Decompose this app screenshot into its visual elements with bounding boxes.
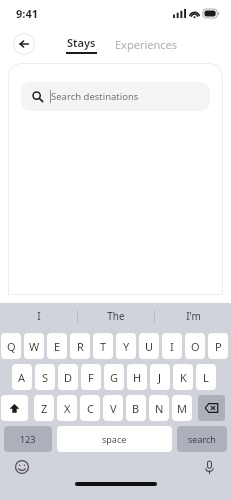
button[interactable]: The xyxy=(78,309,154,323)
button[interactable]: Emoji xyxy=(14,459,30,475)
button[interactable]: Search destinations xyxy=(21,82,210,111)
button[interactable]: Stays xyxy=(64,35,99,54)
staticText: B xyxy=(132,401,140,416)
button[interactable]: M xyxy=(172,395,192,421)
button[interactable]: Dictation xyxy=(201,459,217,475)
staticText: Search destinations xyxy=(51,90,139,103)
staticText: K xyxy=(180,370,187,385)
button[interactable]: Q xyxy=(1,333,21,359)
button[interactable]: Experiences xyxy=(113,35,180,54)
staticText: T xyxy=(100,339,107,354)
staticText: E xyxy=(54,339,61,354)
button[interactable]: search xyxy=(177,426,227,452)
staticText: F xyxy=(88,370,94,385)
staticText: Z xyxy=(41,401,48,416)
button[interactable]: I'm xyxy=(155,309,231,323)
staticText: Stays xyxy=(67,35,96,50)
button[interactable]: C xyxy=(80,395,100,421)
staticText: X xyxy=(64,401,71,416)
button[interactable]: K xyxy=(173,364,193,390)
button[interactable]: B xyxy=(126,395,146,421)
button[interactable]: X xyxy=(57,395,77,421)
staticText: R xyxy=(77,339,84,354)
button[interactable]: A xyxy=(12,364,32,390)
staticText: search xyxy=(188,433,216,445)
button[interactable]: E xyxy=(47,333,67,359)
staticText: space xyxy=(102,433,127,445)
button[interactable]: Y xyxy=(116,333,136,359)
button[interactable]: P xyxy=(208,333,228,359)
staticText: S xyxy=(42,370,49,385)
staticText: D xyxy=(64,370,73,385)
button[interactable]: W xyxy=(24,333,44,359)
button[interactable]: J xyxy=(150,364,170,390)
button[interactable]: S xyxy=(35,364,55,390)
staticText: The xyxy=(107,309,125,323)
staticText: U xyxy=(145,339,154,354)
button[interactable]: T xyxy=(93,333,113,359)
staticText: Q xyxy=(7,339,16,354)
button[interactable]: H xyxy=(127,364,147,390)
button[interactable]: L xyxy=(196,364,216,390)
staticText: P xyxy=(215,339,222,354)
button[interactable]: Z xyxy=(34,395,54,421)
staticText: A xyxy=(18,370,26,385)
button[interactable]: 123 xyxy=(4,426,52,452)
button[interactable]: Back xyxy=(13,33,35,55)
button[interactable]: N xyxy=(149,395,169,421)
staticText: M xyxy=(177,401,187,416)
staticText: I xyxy=(37,309,41,323)
staticText: I'm xyxy=(186,309,201,323)
button[interactable]: R xyxy=(70,333,90,359)
button[interactable]: O xyxy=(185,333,205,359)
button[interactable]: Shift xyxy=(1,395,28,421)
button[interactable]: U xyxy=(139,333,159,359)
staticText: G xyxy=(110,370,119,385)
button[interactable]: D xyxy=(58,364,78,390)
button[interactable]: Backspace xyxy=(198,395,225,421)
button[interactable]: G xyxy=(104,364,124,390)
button[interactable]: F xyxy=(81,364,101,390)
staticText: J xyxy=(158,370,162,385)
button[interactable]: space xyxy=(57,426,172,452)
button[interactable]: V xyxy=(103,395,123,421)
staticText: L xyxy=(203,370,209,385)
staticText: Experiences xyxy=(115,37,178,52)
staticText: 123 xyxy=(20,433,36,445)
staticText: H xyxy=(133,370,142,385)
staticText: W xyxy=(29,339,40,354)
staticText: I xyxy=(170,339,174,354)
button[interactable]: I xyxy=(162,333,182,359)
staticText: O xyxy=(191,339,200,354)
staticText: 9:41 xyxy=(16,6,38,21)
staticText: N xyxy=(155,401,164,416)
staticText: V xyxy=(110,401,117,416)
button[interactable]: I xyxy=(0,309,77,323)
staticText: C xyxy=(87,401,94,416)
staticText: Y xyxy=(123,339,130,354)
